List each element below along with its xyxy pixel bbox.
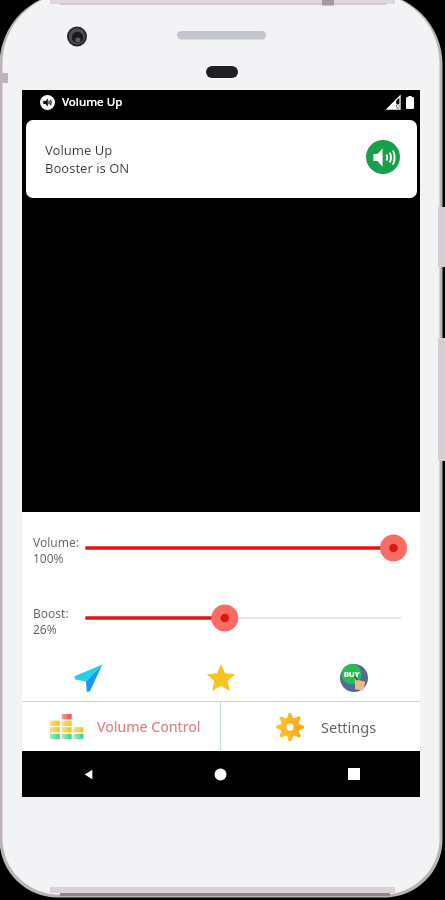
button[interactable]: Settings (221, 702, 420, 751)
staticText: Boost: (33, 605, 69, 621)
button[interactable]: Share app (22, 655, 154, 700)
staticText: Volume Control (97, 717, 201, 736)
staticText: Settings (321, 717, 377, 737)
button[interactable]: Volume booster on (366, 140, 400, 174)
button[interactable]: Volume Control (22, 702, 220, 751)
staticText: Volume: (33, 534, 79, 550)
staticText: Volume Up (62, 94, 123, 110)
staticText: Booster is ON (45, 159, 130, 177)
staticText: 26% (33, 621, 57, 637)
button[interactable] (72, 601, 420, 635)
button[interactable] (72, 531, 420, 565)
button[interactable]: Volume Up (26, 120, 417, 198)
staticText: 100% (33, 550, 64, 566)
button[interactable]: Back (22, 751, 154, 797)
staticText: Volume Up (45, 141, 113, 159)
button[interactable]: Home (154, 751, 287, 797)
button[interactable]: Buy pro version (287, 655, 420, 700)
button[interactable]: Recent apps (287, 751, 420, 797)
staticText: BUY (344, 669, 360, 679)
button[interactable]: Rate us (154, 655, 287, 700)
